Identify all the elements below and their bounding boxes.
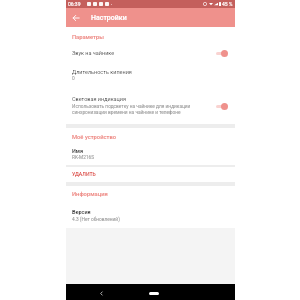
button[interactable]: УДАЛИТЬ bbox=[66, 168, 235, 180]
staticText: 06:39 bbox=[68, 1, 81, 7]
staticText: Длительность кипения bbox=[72, 69, 132, 75]
staticText: УДАЛИТЬ bbox=[72, 171, 96, 177]
staticText: Использовать подсветку на чайнике для ин… bbox=[72, 104, 191, 110]
staticText: Версия bbox=[72, 209, 91, 215]
button[interactable]: Toggle switch bbox=[213, 100, 235, 112]
button[interactable]: Home bbox=[146, 288, 162, 298]
staticText: 0 bbox=[72, 76, 75, 82]
staticText: RK-M216S bbox=[72, 155, 95, 161]
staticText: Информация bbox=[72, 191, 108, 198]
staticText: 45 % bbox=[222, 1, 233, 7]
staticText: 4.3 (Нет обновлений) bbox=[72, 217, 120, 223]
staticText: Имя bbox=[72, 148, 84, 154]
button[interactable]: Back bbox=[69, 11, 83, 25]
staticText: Параметры bbox=[72, 34, 104, 41]
staticText: Звук на чайнике bbox=[72, 50, 115, 56]
staticText: Моё устройство bbox=[72, 134, 116, 141]
button[interactable]: Toggle switch bbox=[213, 47, 235, 59]
staticText: Настройки bbox=[91, 14, 127, 22]
button[interactable]: Back bbox=[96, 288, 106, 298]
staticText: Световая индикация bbox=[72, 96, 127, 102]
staticText: синхронизации времени на чайнике и телеф… bbox=[72, 110, 181, 116]
